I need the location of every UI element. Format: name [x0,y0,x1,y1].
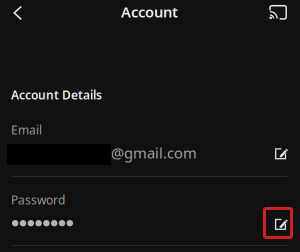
staticText: Account Details [11,87,102,103]
button[interactable]: Back [2,0,28,24]
button[interactable]: Edit email [268,140,292,164]
staticText: @gmail.com [111,143,197,162]
button[interactable]: Cast [265,1,291,23]
staticText: Email [11,122,42,138]
staticText: Account [121,2,178,21]
button[interactable]: Edit password [263,207,293,239]
staticText: Password [11,192,65,208]
